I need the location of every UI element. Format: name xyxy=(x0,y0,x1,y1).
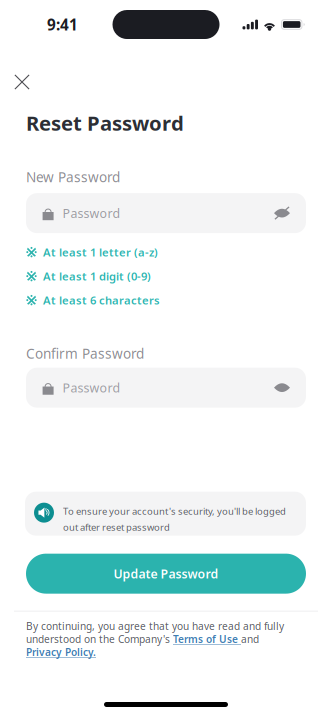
staticText: Confirm Password xyxy=(26,344,144,363)
staticText: Password xyxy=(62,205,120,222)
staticText: Terms of Use xyxy=(173,632,241,646)
button[interactable]: Privacy Policy. xyxy=(26,646,96,659)
staticText: At least 1 digit (0-9) xyxy=(43,268,151,284)
staticText: Password xyxy=(62,379,120,396)
staticText: At least 6 characters xyxy=(43,292,160,308)
button[interactable]: Close xyxy=(0,67,37,97)
staticText: Privacy Policy. xyxy=(26,645,96,659)
button[interactable]: Terms of Use xyxy=(173,632,241,646)
staticText: At least 1 letter (a-z) xyxy=(43,244,158,260)
button[interactable]: Update Password xyxy=(26,554,306,594)
staticText: Reset Password xyxy=(26,109,184,137)
staticText: 9:41 xyxy=(47,14,78,35)
button[interactable]: Show password xyxy=(270,201,294,225)
staticText: out after reset password xyxy=(63,520,170,533)
staticText: To ensure your account's security, you'l… xyxy=(63,505,286,518)
staticText: understood on the Company's xyxy=(26,632,173,646)
staticText: New Password xyxy=(26,168,120,186)
staticText: By continuing, you agree that you have r… xyxy=(26,619,284,633)
button[interactable]: Hide password xyxy=(270,376,294,400)
staticText: and xyxy=(241,632,259,646)
staticText: Update Password xyxy=(113,565,218,582)
